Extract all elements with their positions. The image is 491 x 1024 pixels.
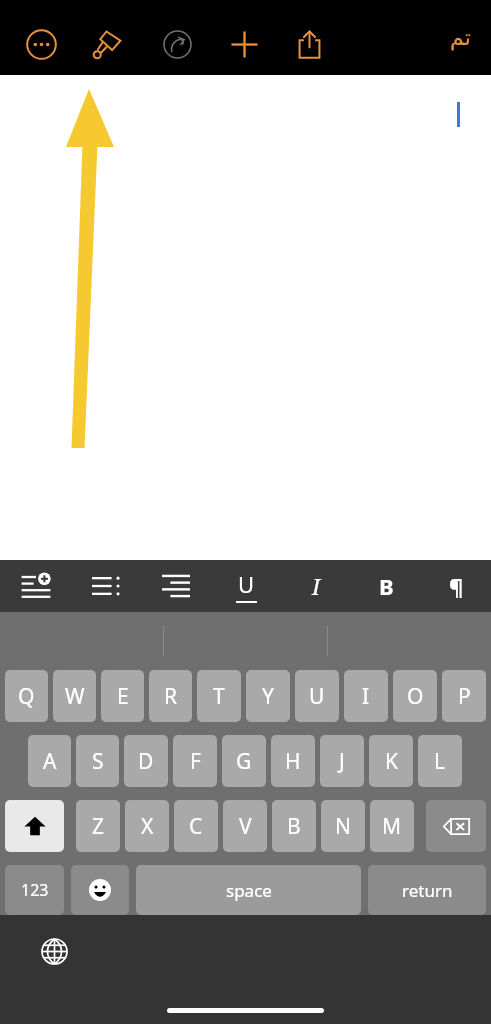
staticText: return — [402, 879, 453, 902]
button[interactable]: 123 — [5, 865, 64, 915]
staticText: L — [434, 747, 446, 776]
button[interactable]: U — [295, 670, 339, 722]
button[interactable]: A — [28, 735, 71, 787]
staticText: X — [141, 812, 154, 841]
button[interactable]: J — [320, 735, 364, 787]
staticText: M — [382, 812, 402, 841]
staticText: N — [335, 812, 351, 841]
button[interactable]: Italic — [281, 560, 351, 612]
button[interactable]: W — [53, 670, 96, 722]
staticText: U — [309, 682, 325, 711]
button[interactable]: F — [173, 735, 217, 787]
button[interactable]: Align right — [141, 560, 211, 612]
button[interactable]: Bold — [351, 560, 421, 612]
staticText: O — [407, 682, 424, 711]
staticText: D — [138, 747, 154, 776]
staticText: B — [379, 571, 394, 601]
staticText: Q — [18, 682, 35, 711]
staticText: B — [287, 812, 301, 841]
staticText: A — [43, 747, 57, 776]
staticText: Z — [92, 812, 105, 841]
button[interactable]: Shift — [5, 800, 64, 852]
staticText: I — [362, 682, 370, 711]
button[interactable]: X — [125, 800, 169, 852]
staticText: J — [339, 747, 345, 776]
button[interactable]: Share — [286, 21, 333, 68]
staticText: I — [312, 571, 321, 601]
staticText: V — [239, 812, 252, 841]
button[interactable]: تم — [444, 19, 477, 57]
staticText: T — [213, 682, 225, 711]
button[interactable]: P — [442, 670, 486, 722]
staticText: U — [238, 569, 255, 599]
button[interactable]: B — [272, 800, 316, 852]
staticText: K — [385, 747, 398, 776]
button[interactable]: return — [368, 865, 486, 915]
button[interactable]: S — [76, 735, 119, 787]
staticText: G — [236, 747, 252, 776]
button[interactable]: G — [222, 735, 266, 787]
button[interactable]: Brush — [83, 21, 130, 68]
button[interactable]: space — [136, 865, 361, 915]
button[interactable]: V — [223, 800, 267, 852]
button[interactable]: I — [344, 670, 388, 722]
staticText: H — [285, 747, 301, 776]
button[interactable]: O — [393, 670, 437, 722]
button[interactable]: H — [271, 735, 315, 787]
staticText: R — [164, 682, 178, 711]
button[interactable]: N — [321, 800, 365, 852]
button[interactable]: D — [124, 735, 168, 787]
button[interactable]: Backspace — [426, 800, 486, 852]
button[interactable]: Paragraph — [421, 560, 491, 612]
button[interactable]: Change keyboard — [36, 933, 72, 969]
button[interactable]: Add — [221, 21, 268, 68]
button[interactable]: Emoji — [71, 865, 129, 915]
button[interactable]: Z — [76, 800, 120, 852]
staticText: 123 — [21, 879, 49, 901]
button[interactable]: Bulleted list — [71, 560, 141, 612]
button[interactable]: C — [174, 800, 218, 852]
staticText: F — [190, 747, 201, 776]
button[interactable]: E — [101, 670, 144, 722]
staticText: W — [65, 682, 85, 711]
button[interactable]: L — [418, 735, 462, 787]
button[interactable]: More options — [18, 21, 65, 68]
staticText: space — [226, 879, 272, 902]
staticText: Y — [262, 682, 274, 711]
button[interactable]: Y — [246, 670, 290, 722]
button[interactable]: R — [149, 670, 192, 722]
staticText: C — [189, 812, 203, 841]
button[interactable]: Underline — [211, 560, 281, 612]
button[interactable]: M — [370, 800, 414, 852]
button[interactable]: Insert list — [0, 560, 71, 612]
button[interactable]: T — [197, 670, 241, 722]
staticText: P — [458, 682, 471, 711]
button[interactable]: K — [369, 735, 413, 787]
button[interactable]: Q — [5, 670, 48, 722]
button[interactable]: Redo — [154, 21, 201, 68]
staticText: ¶ — [449, 571, 464, 601]
staticText: E — [117, 682, 129, 711]
staticText: تم — [450, 25, 471, 51]
staticText: S — [92, 747, 104, 776]
